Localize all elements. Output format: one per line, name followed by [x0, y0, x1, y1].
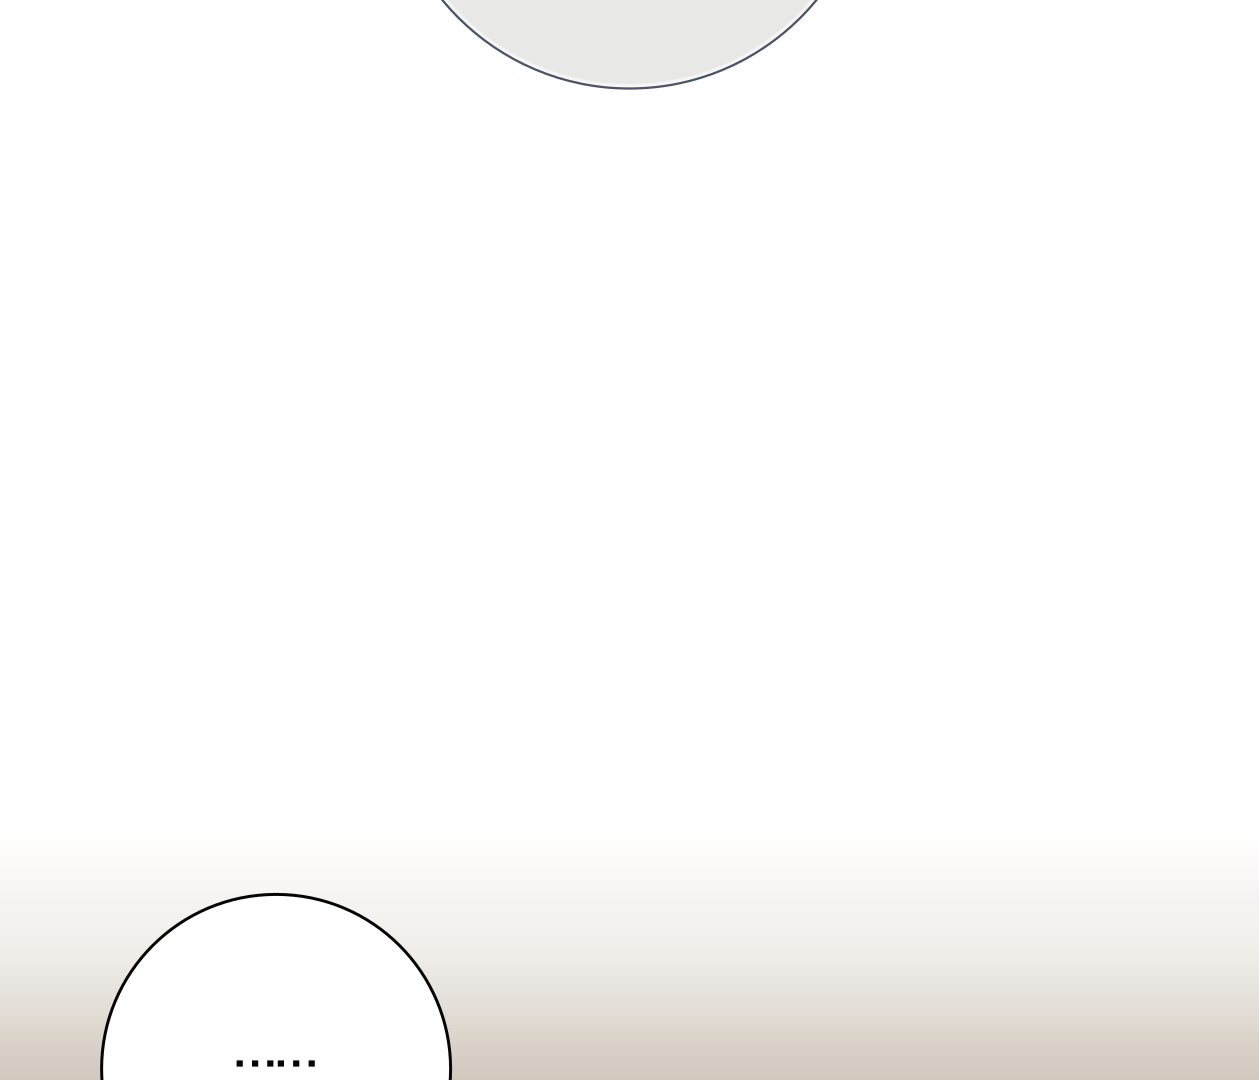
button[interactable]: More [102, 894, 451, 1080]
